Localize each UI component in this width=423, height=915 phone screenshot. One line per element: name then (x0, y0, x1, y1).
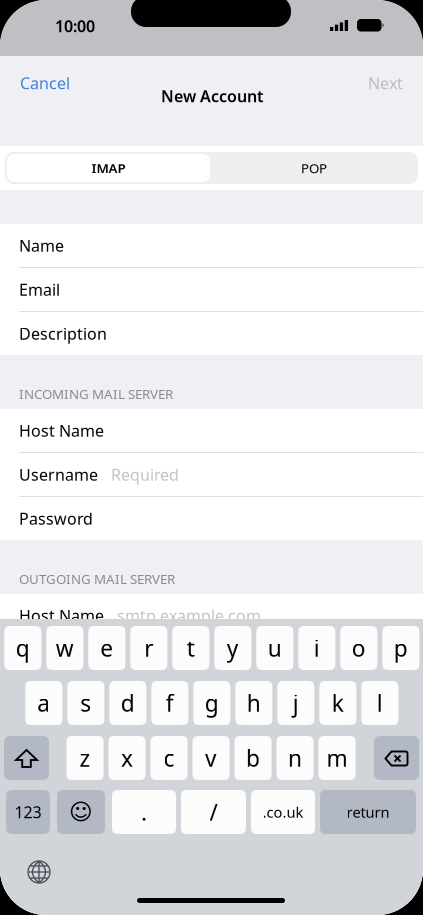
staticText: return (346, 802, 389, 822)
button[interactable]: Shift (4, 736, 49, 780)
staticText: a (37, 688, 50, 718)
button[interactable]: POP (212, 154, 416, 182)
staticText: c (164, 743, 175, 773)
button[interactable]: j (277, 681, 314, 725)
staticText: 10:00 (55, 15, 95, 37)
staticText: o (352, 633, 366, 663)
button[interactable]: ☺ (57, 790, 105, 834)
staticText: q (16, 633, 30, 663)
button[interactable]: v (192, 736, 230, 780)
staticText: IMAP (91, 159, 125, 177)
staticText: w (56, 633, 74, 663)
button[interactable]: z (66, 736, 104, 780)
button[interactable]: k (319, 681, 356, 725)
button[interactable]: n (276, 736, 314, 780)
button[interactable]: g (193, 681, 230, 725)
staticText: Name (19, 235, 64, 256)
staticText: u (268, 633, 282, 663)
button[interactable]: Password (0, 497, 423, 540)
button[interactable]: Delete (374, 736, 419, 780)
staticText: Username (19, 464, 98, 485)
button[interactable]: Cancel (20, 66, 90, 100)
button[interactable]: Username (0, 453, 423, 496)
button[interactable]: Host Name (0, 594, 423, 637)
staticText: .co.uk (262, 802, 303, 822)
button[interactable]: IMAP (7, 154, 210, 182)
staticText: Host Name (19, 605, 104, 626)
staticText: l (377, 688, 383, 718)
staticText: POP (301, 159, 327, 177)
button[interactable]: return (320, 790, 416, 834)
staticText: . (141, 797, 147, 827)
button[interactable]: a (25, 681, 62, 725)
staticText: v (205, 743, 217, 773)
button[interactable]: Next (333, 66, 403, 100)
button[interactable]: Name (0, 224, 423, 267)
button[interactable]: w (46, 626, 83, 670)
staticText: p (394, 633, 408, 663)
button[interactable]: m (318, 736, 356, 780)
button[interactable]: p (382, 626, 419, 670)
button[interactable]: Host Name (0, 409, 423, 452)
staticText: e (100, 633, 113, 663)
staticText: s (80, 688, 91, 718)
staticText: i (314, 633, 320, 663)
staticText: d (121, 688, 135, 718)
staticText: m (327, 743, 348, 773)
button[interactable]: q (4, 626, 41, 670)
staticText: New Account (161, 85, 263, 107)
button[interactable]: y (214, 626, 251, 670)
button[interactable]: i (298, 626, 335, 670)
button[interactable]: Next keyboard (23, 856, 55, 888)
button[interactable]: h (235, 681, 272, 725)
button[interactable]: o (340, 626, 377, 670)
staticText: n (288, 743, 302, 773)
staticText: j (293, 688, 299, 718)
button[interactable]: b (234, 736, 272, 780)
staticText: t (187, 633, 195, 663)
staticText: Cancel (20, 72, 70, 94)
staticText: Host Name (19, 420, 104, 441)
staticText: OUTGOING MAIL SERVER (19, 570, 175, 588)
staticText: g (205, 688, 219, 718)
staticText: y (227, 633, 239, 663)
staticText: b (246, 743, 260, 773)
staticText: ☺ (69, 799, 93, 825)
button[interactable]: e (88, 626, 125, 670)
button[interactable]: x (108, 736, 146, 780)
button[interactable]: Email (0, 268, 423, 311)
button[interactable]: d (109, 681, 146, 725)
button[interactable]: / (181, 790, 246, 834)
button[interactable]: l (361, 681, 398, 725)
button[interactable]: s (67, 681, 104, 725)
button[interactable]: u (256, 626, 293, 670)
staticText: smtp.example.com (117, 605, 261, 626)
button[interactable]: .co.uk (251, 790, 315, 834)
staticText: Required (111, 464, 179, 485)
button[interactable]: f (151, 681, 188, 725)
staticText: r (144, 633, 153, 663)
staticText: / (209, 797, 217, 827)
staticText: h (247, 688, 261, 718)
staticText: INCOMING MAIL SERVER (19, 385, 173, 403)
button[interactable]: Description (0, 312, 423, 355)
staticText: Password (19, 508, 93, 529)
staticText: k (332, 688, 344, 718)
button[interactable]: t (172, 626, 209, 670)
staticText: Email (19, 279, 60, 300)
staticText: x (121, 743, 133, 773)
button[interactable]: c (150, 736, 188, 780)
staticText: Description (19, 323, 107, 344)
staticText: f (166, 688, 174, 718)
button[interactable]: . (112, 790, 176, 834)
staticText: z (79, 743, 90, 773)
button[interactable]: 123 (6, 790, 50, 834)
staticText: Next (368, 72, 403, 94)
staticText: 123 (14, 801, 41, 823)
button[interactable]: r (130, 626, 167, 670)
